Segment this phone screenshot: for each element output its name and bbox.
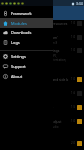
- staticText: 1.0: [71, 77, 76, 81]
- button[interactable]: Downloads: [0, 27, 53, 37]
- staticText: Header and side b: [40, 77, 70, 81]
- staticText: 1.0: [71, 35, 76, 39]
- staticText: per-app DPI, screen, orientation, locale: [40, 54, 67, 66]
- other: Toggle Greenify: [77, 105, 82, 110]
- staticText: 1.0: [71, 48, 76, 52]
- button[interactable]: Disable resources: [0, 19, 84, 33]
- staticText: 1.0: [71, 21, 76, 25]
- staticText: Enable 'pm': [40, 35, 70, 39]
- other: Toggle XuiMod: [77, 141, 82, 146]
- staticText: App settings: [40, 48, 70, 52]
- staticText: 1.6: [71, 91, 76, 95]
- button[interactable]: App settings: [0, 46, 84, 75]
- other: Toggle Gravity adjust: [77, 119, 82, 124]
- other: Battery: [71, 2, 75, 6]
- button[interactable]: Support: [0, 61, 53, 71]
- button[interactable]: About: [0, 71, 53, 81]
- button[interactable]: Greenify: [0, 103, 84, 117]
- button[interactable]: XPrivacy: [0, 89, 84, 103]
- staticText: 1.0: [71, 119, 76, 123]
- staticText: About: [11, 74, 23, 79]
- staticText: Logs: [11, 40, 20, 45]
- button[interactable]: Enable 'pm': [0, 33, 84, 47]
- button[interactable]: Framework: [0, 8, 53, 18]
- staticText: Settings: [11, 54, 26, 59]
- other: Toggle Header and side b: [77, 77, 82, 82]
- staticText: custom audio info: [40, 125, 59, 133]
- staticText: 2.0: [71, 141, 76, 145]
- button[interactable]: Logs: [0, 37, 53, 47]
- staticText: disabled in 8: [40, 41, 58, 45]
- button[interactable]: Modules: [0, 18, 53, 28]
- staticText: Framework: [11, 11, 32, 16]
- staticText: Support: [11, 64, 26, 69]
- button[interactable]: Settings: [0, 51, 53, 61]
- staticText: Modules: [11, 21, 27, 26]
- staticText: 3:34: [76, 1, 83, 6]
- button[interactable]: XuiMod: [0, 139, 84, 150]
- button[interactable]: Header and side b: [0, 75, 84, 89]
- button[interactable]: Gravity adjust: [0, 117, 84, 139]
- staticText: Gravity adjust: [40, 119, 70, 123]
- staticText: Downloads: [11, 30, 32, 35]
- staticText: 1.5: [71, 105, 76, 109]
- staticText: Disable resources: [40, 21, 70, 25]
